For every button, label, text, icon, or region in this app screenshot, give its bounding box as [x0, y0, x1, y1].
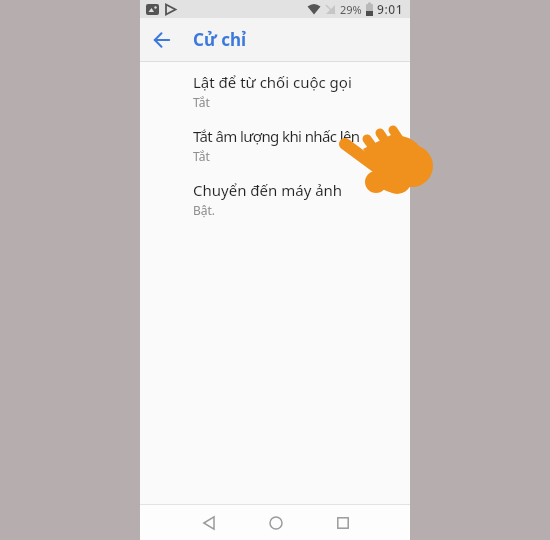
staticText: 9:01	[377, 1, 404, 17]
button[interactable]	[248, 505, 303, 540]
button[interactable]: Lật để từ chối cuộc gọi	[140, 62, 410, 116]
staticText: Lật để từ chối cuộc gọi	[193, 72, 352, 92]
button[interactable]	[315, 505, 370, 540]
staticText: Tắt	[193, 148, 210, 164]
staticText: Cử chỉ	[193, 28, 247, 51]
button[interactable]	[181, 505, 236, 540]
button[interactable]: Chuyển đến máy ảnh	[140, 170, 410, 224]
staticText: Chuyển đến máy ảnh	[193, 180, 343, 200]
button[interactable]	[140, 18, 183, 61]
staticText: Tắt âm lượng khi nhấc lên	[193, 126, 360, 146]
button[interactable]: Tắt âm lượng khi nhấc lên	[140, 116, 410, 170]
staticText: Bật.	[193, 202, 216, 218]
staticText: 29%	[340, 2, 362, 17]
staticText: Tắt	[193, 94, 210, 110]
